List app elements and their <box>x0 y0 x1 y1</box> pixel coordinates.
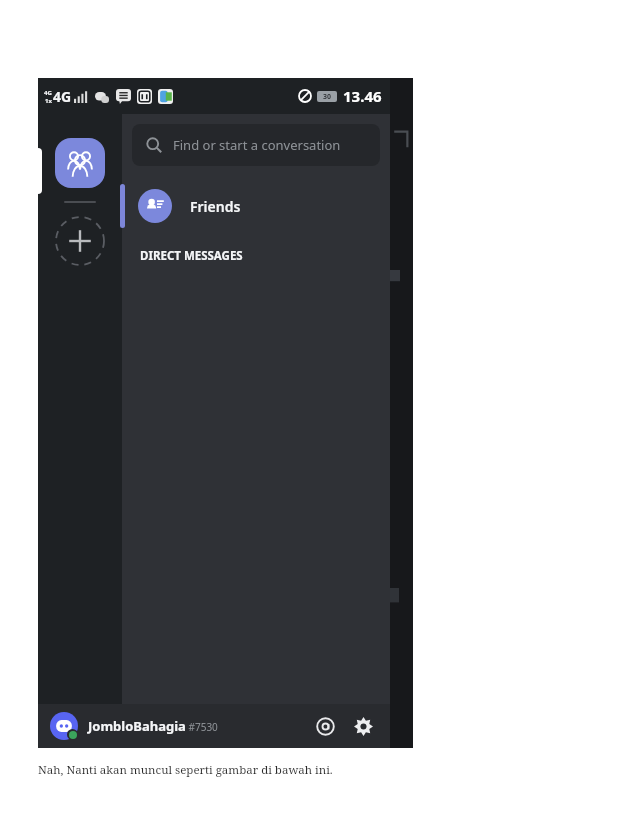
staticText: Find or start a conversation <box>173 136 341 154</box>
button[interactable]: Mentions <box>310 711 340 741</box>
staticText: JombloBahagia #7530 <box>88 717 310 735</box>
button[interactable]: Friends <box>122 180 390 232</box>
staticText: 30 <box>323 92 332 102</box>
staticText: 1x <box>45 97 52 105</box>
button[interactable]: Settings <box>348 711 378 741</box>
staticText: DIRECT MESSAGES <box>140 248 243 264</box>
staticText: Nah, Nanti akan muncul seperti gambar di… <box>38 762 333 778</box>
staticText: 4G <box>44 89 52 97</box>
staticText: 4G <box>53 87 72 106</box>
button[interactable] <box>55 138 105 188</box>
button[interactable]: User avatar <box>50 712 78 740</box>
button[interactable]: Add a server <box>54 215 106 267</box>
staticText: Friends <box>190 197 241 216</box>
staticText: 13.46 <box>343 86 382 106</box>
button[interactable]: Find or start a conversation <box>132 124 380 166</box>
